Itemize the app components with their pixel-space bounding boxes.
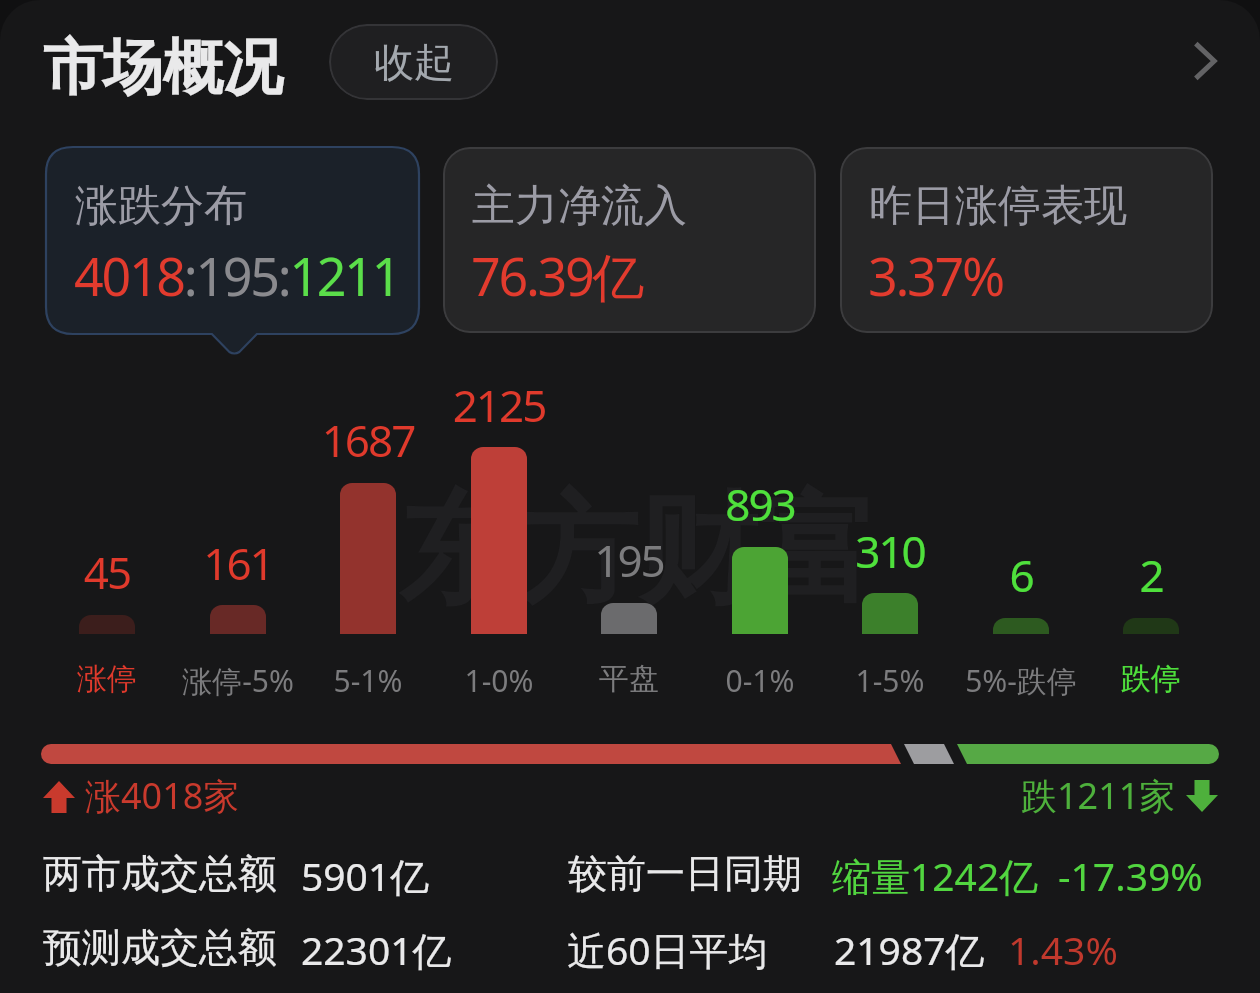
staticText: 较前一日同期 [568, 849, 802, 898]
staticText: 1.43% [1008, 923, 1118, 976]
button[interactable]: 涨跌家数比例 [36, 736, 1224, 822]
staticText: 5%-跌停 [911, 660, 1131, 701]
staticText: 0-1% [650, 660, 870, 701]
staticText: 涨停 [0, 660, 217, 698]
staticText: 21987亿 [834, 923, 985, 976]
staticText: 310 [780, 521, 1000, 581]
button[interactable]: 展开 [1172, 28, 1238, 94]
button[interactable]: 主力净流入 [443, 147, 816, 333]
button[interactable]: 昨日涨停表现 [840, 147, 1213, 333]
staticText: 涨4018家 [85, 771, 240, 820]
staticText: -17.39% [1058, 849, 1203, 902]
staticText: 跌停 [1041, 660, 1260, 698]
button[interactable]: 涨跌分布 [46, 147, 419, 353]
staticText: 近60日平均 [567, 923, 768, 976]
staticText: 主力净流入 [472, 179, 687, 233]
staticText: 5901亿 [301, 849, 430, 902]
staticText: 涨跌分布 [75, 179, 247, 233]
staticText: 缩量1242亿 [832, 849, 1039, 902]
button[interactable] [36, 914, 1224, 984]
staticText: 2 [1041, 545, 1260, 605]
button[interactable] [36, 840, 1224, 910]
staticText: 22301亿 [301, 923, 452, 976]
staticText: 3.37% [868, 240, 1003, 311]
button[interactable]: 收起 [329, 24, 498, 100]
staticText: 市场概况 [43, 30, 283, 106]
staticText: 4018:195:1211 [74, 240, 400, 311]
staticText: 45 [0, 542, 217, 602]
staticText: 跌1211家 [1021, 771, 1176, 820]
staticText: 涨停-5% [128, 660, 348, 701]
staticText: 195 [519, 530, 739, 590]
button[interactable]: 市场概况 [43, 30, 283, 106]
staticText: 6 [911, 545, 1131, 605]
staticText: 2125 [389, 375, 609, 435]
staticText: 昨日涨停表现 [869, 179, 1127, 233]
staticText: 平盘 [519, 660, 739, 698]
staticText: 两市成交总额 [43, 849, 277, 898]
staticText: 893 [650, 474, 870, 534]
staticText: 1-0% [389, 660, 609, 701]
staticText: 76.39亿 [471, 240, 643, 311]
button[interactable]: 涨跌家数分布图 [36, 380, 1224, 700]
staticText: 预测成交总额 [43, 923, 277, 972]
staticText: 5-1% [258, 660, 478, 701]
staticText: 东方财富 [398, 475, 878, 626]
staticText: 161 [128, 533, 348, 593]
staticText: 收起 [374, 37, 454, 87]
staticText: 1687 [258, 410, 478, 470]
staticText: 1-5% [780, 660, 1000, 701]
